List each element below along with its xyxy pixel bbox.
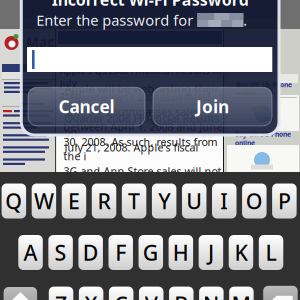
staticText: Y bbox=[158, 187, 170, 215]
button[interactable]: D bbox=[78, 235, 103, 270]
button[interactable]: O bbox=[242, 183, 267, 218]
staticText: S bbox=[55, 238, 67, 267]
button[interactable]: M bbox=[229, 287, 254, 300]
staticText: 21st bbox=[59, 89, 78, 102]
staticText: H bbox=[173, 238, 189, 267]
button[interactable]: Cancel bbox=[28, 87, 145, 126]
staticText: O bbox=[246, 187, 263, 215]
staticText: T bbox=[128, 187, 140, 215]
button[interactable]: G bbox=[138, 235, 163, 270]
button[interactable]: Y bbox=[152, 183, 176, 218]
staticText: Buy UK 3G Phone online bbox=[235, 130, 291, 147]
staticText: C bbox=[114, 290, 128, 300]
staticText: Quarter 2008 Financial Results on bbox=[64, 111, 219, 139]
button[interactable]: Shift bbox=[4, 287, 37, 300]
button[interactable]: Z bbox=[49, 287, 73, 300]
staticText: I bbox=[220, 187, 228, 215]
button[interactable]: W bbox=[32, 183, 56, 218]
staticText: Q bbox=[5, 187, 22, 215]
staticText: MacRumors.com bbox=[26, 33, 138, 51]
button[interactable]: K bbox=[229, 235, 253, 270]
button[interactable]: Join bbox=[153, 87, 272, 126]
staticText: quarter encompasses sales bbox=[63, 104, 200, 119]
button[interactable]: S bbox=[48, 235, 73, 270]
button[interactable]: V bbox=[139, 287, 163, 300]
button[interactable]: N bbox=[199, 287, 224, 300]
button[interactable]: L bbox=[259, 235, 283, 270]
staticText: Enter the password for bbox=[36, 10, 197, 30]
staticText: U bbox=[186, 187, 202, 215]
staticText: W bbox=[34, 187, 54, 215]
staticText: M bbox=[231, 290, 251, 300]
staticText: B bbox=[174, 290, 188, 300]
button[interactable]: H bbox=[169, 235, 193, 270]
staticText: X bbox=[85, 290, 98, 300]
button[interactable]: R bbox=[92, 183, 116, 218]
staticText: between April 1, 2008 and June bbox=[63, 120, 222, 134]
staticText: P bbox=[278, 187, 291, 215]
button[interactable]: Q bbox=[2, 183, 26, 218]
staticText: Apple will be webcasting their 3rd bbox=[64, 82, 218, 110]
button[interactable]: E bbox=[62, 183, 86, 218]
staticText: . bbox=[243, 10, 247, 30]
staticText: Z bbox=[55, 290, 67, 300]
button[interactable]: I bbox=[212, 183, 236, 218]
staticText: in the earnings report. bbox=[63, 193, 178, 208]
button[interactable]: Delete bbox=[263, 286, 298, 300]
staticText: Cancel bbox=[58, 95, 114, 118]
button[interactable]: P bbox=[272, 183, 297, 218]
staticText: July 21, 2008. Apple's fiscal bbox=[64, 140, 198, 154]
button[interactable]: J bbox=[199, 235, 223, 270]
staticText: L bbox=[265, 238, 276, 267]
button[interactable]: A bbox=[18, 235, 43, 270]
staticText: N bbox=[203, 290, 220, 300]
staticText: J bbox=[208, 238, 214, 267]
staticText: 30, 2008. As such, results from the i bbox=[63, 135, 217, 163]
staticText: R bbox=[97, 187, 110, 215]
staticText: F bbox=[115, 238, 126, 267]
button[interactable]: U bbox=[182, 183, 206, 218]
button[interactable]: F bbox=[108, 235, 133, 270]
staticText: K bbox=[234, 238, 247, 267]
button[interactable]: X bbox=[79, 287, 103, 300]
staticText: 3G and App Store sales will not be bbox=[63, 164, 221, 192]
button[interactable]: B bbox=[169, 287, 193, 300]
button[interactable]: C bbox=[109, 287, 133, 300]
staticText: Thursday July 17, 2008 03:09 PM EST bbox=[73, 93, 210, 103]
staticText: Buy UK 3G Phone online bbox=[236, 80, 292, 98]
staticText: Incorrect Wi-Fi Password bbox=[52, 0, 249, 10]
staticText: Join bbox=[196, 95, 229, 118]
staticText: A bbox=[24, 238, 38, 267]
staticText: G bbox=[143, 238, 159, 267]
staticText: Apple's Q3 2008 Financial Results on Jul… bbox=[59, 64, 224, 89]
staticText: V bbox=[145, 290, 158, 300]
button[interactable]: T bbox=[122, 183, 146, 218]
staticText: D bbox=[83, 238, 99, 267]
staticText: E bbox=[68, 187, 80, 215]
